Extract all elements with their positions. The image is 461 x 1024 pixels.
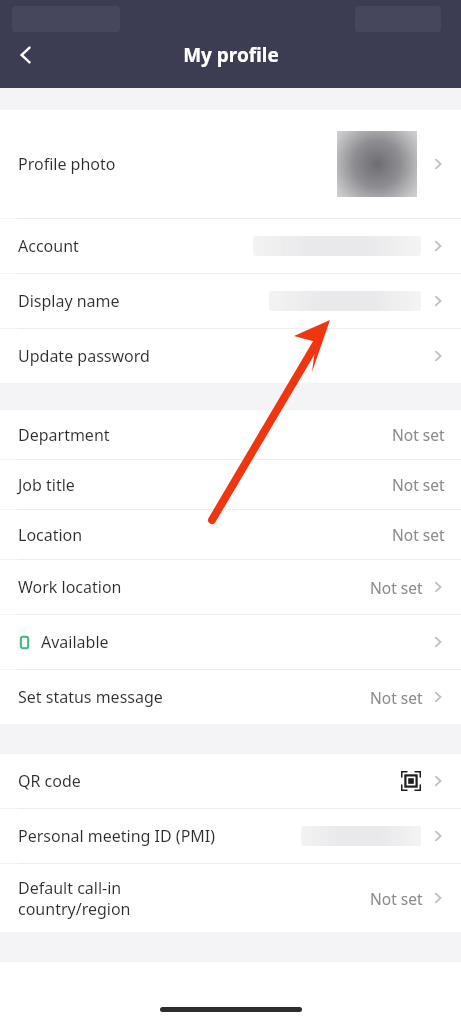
staticText: Not set: [370, 687, 423, 708]
button[interactable]: Department: [0, 410, 461, 459]
staticText: Job title: [18, 474, 75, 496]
button[interactable]: QR code: [0, 754, 461, 808]
button[interactable]: Account: [0, 219, 461, 273]
staticText: QR code: [18, 770, 81, 792]
staticText: Default call-in country/region: [18, 877, 131, 920]
button[interactable]: Set status message: [0, 670, 461, 724]
staticText: Personal meeting ID (PMI): [18, 825, 216, 847]
staticText: Update password: [18, 345, 150, 367]
staticText: Not set: [392, 424, 445, 445]
button[interactable]: Personal meeting ID (PMI): [0, 809, 461, 863]
button[interactable]: Back: [0, 29, 52, 81]
button[interactable]: Work location: [0, 560, 461, 614]
button[interactable]: Available: [0, 615, 461, 669]
staticText: Location: [18, 524, 83, 546]
staticText: Account: [18, 235, 79, 257]
button[interactable]: Job title: [0, 460, 461, 509]
staticText: Not set: [392, 524, 445, 545]
staticText: Display name: [18, 290, 120, 312]
staticText: Available: [41, 631, 109, 653]
button[interactable]: Profile photo: [0, 110, 461, 218]
button[interactable]: Location: [0, 510, 461, 559]
button[interactable]: Display name: [0, 274, 461, 328]
staticText: Not set: [370, 577, 423, 598]
staticText: Department: [18, 424, 110, 446]
button[interactable]: Update password: [0, 329, 461, 383]
staticText: Profile photo: [18, 153, 116, 175]
staticText: Not set: [392, 474, 445, 495]
staticText: Work location: [18, 576, 122, 598]
staticText: Set status message: [18, 686, 163, 708]
staticText: Not set: [370, 888, 423, 909]
button[interactable]: Default call-in country/region: [0, 864, 461, 932]
staticText: My profile: [183, 42, 279, 68]
